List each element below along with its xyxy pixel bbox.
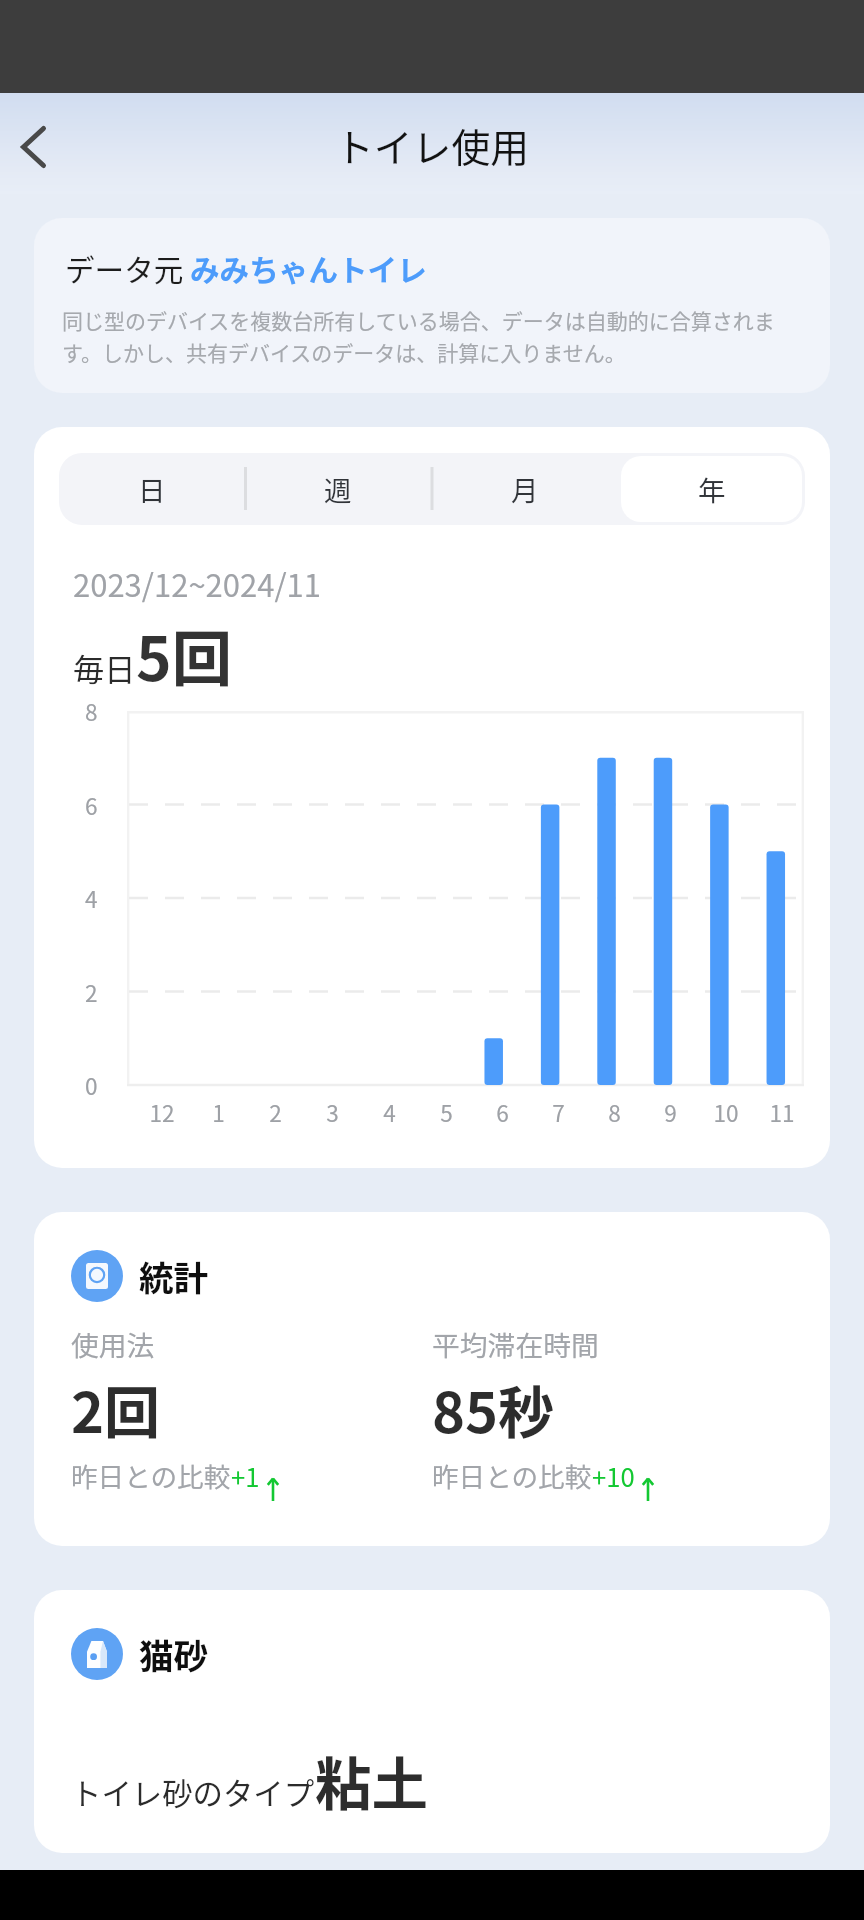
- staticText: 同じ型のデバイスを複数台所有している場合、データは自動的に合算されます。しかし、…: [62, 305, 786, 367]
- staticText: 85秒: [432, 1368, 555, 1449]
- staticText: 4: [85, 882, 98, 914]
- staticText: 2: [85, 976, 98, 1008]
- staticText: 毎日: [73, 645, 136, 690]
- staticText: 12: [149, 1096, 175, 1129]
- staticText: 統計: [139, 1251, 209, 1301]
- staticText: 6: [496, 1096, 509, 1129]
- staticText: 2023/12~2024/11: [73, 561, 321, 606]
- staticText: +10: [592, 1457, 635, 1494]
- button[interactable]: データ元 みみちゃんトイレ: [34, 218, 830, 393]
- button[interactable]: 週: [248, 456, 428, 522]
- staticText: 3: [326, 1096, 339, 1129]
- staticText: 6: [85, 789, 98, 821]
- staticText: 11: [769, 1096, 795, 1129]
- button[interactable]: 月: [434, 456, 615, 522]
- staticText: 10: [713, 1096, 739, 1129]
- staticText: 粘土: [315, 1739, 428, 1821]
- staticText: 平均滞在時間: [432, 1324, 599, 1364]
- staticText: 8: [85, 695, 98, 727]
- button[interactable]: 年: [621, 456, 802, 522]
- staticText: 昨日との比較: [71, 1456, 231, 1495]
- staticText: +1: [231, 1457, 260, 1494]
- staticText: 月: [511, 469, 539, 509]
- staticText: 日: [138, 469, 166, 509]
- staticText: 0: [85, 1069, 98, 1101]
- staticText: トイレ砂のタイプ: [71, 1770, 315, 1814]
- button[interactable]: 日: [62, 456, 242, 522]
- staticText: 猫砂: [139, 1629, 209, 1679]
- staticText: 年: [698, 469, 726, 509]
- staticText: 昨日との比較: [432, 1456, 592, 1495]
- staticText: トイレ使用: [335, 117, 529, 173]
- staticText: 5回: [136, 611, 233, 698]
- staticText: 使用法: [71, 1324, 155, 1364]
- staticText: 5: [440, 1096, 453, 1129]
- staticText: 2回: [71, 1368, 161, 1449]
- staticText: 8: [608, 1096, 621, 1129]
- button[interactable]: Back: [2, 116, 64, 178]
- staticText: 1: [212, 1096, 225, 1129]
- staticText: 2: [269, 1096, 282, 1129]
- staticText: 7: [552, 1096, 565, 1129]
- staticText: 週: [324, 469, 352, 509]
- staticText: 9: [664, 1096, 677, 1129]
- staticText: データ元 みみちゃんトイレ: [65, 247, 427, 290]
- staticText: 4: [383, 1096, 396, 1129]
